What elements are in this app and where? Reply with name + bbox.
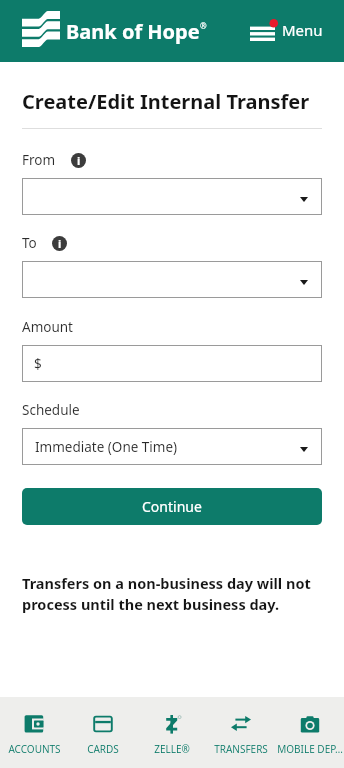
staticText: TRANSFERS (214, 742, 268, 756)
staticText: Menu (282, 20, 323, 40)
staticText: CARDS (87, 742, 119, 756)
staticText: Bank of Hope (66, 18, 200, 45)
button[interactable]: Amount field (22, 345, 322, 382)
staticText: MOBILE DEP… (277, 742, 343, 756)
button[interactable]: MOBILE DEP… (275, 701, 344, 768)
button[interactable]: CARDS (68, 701, 137, 768)
staticText: From (22, 151, 56, 169)
button[interactable]: Info (71, 153, 86, 168)
staticText: ACCOUNTS (8, 742, 61, 756)
staticText: ® (200, 20, 207, 31)
staticText: Immediate (One Time) (35, 438, 178, 456)
button[interactable]: ACCOUNTS (0, 701, 68, 768)
staticText: Transfers on a non-business day will not… (22, 573, 314, 615)
button[interactable]: Continue (22, 488, 322, 525)
button[interactable]: TRANSFERS (206, 701, 275, 768)
staticText: Schedule (22, 401, 80, 419)
button[interactable]: Info (52, 236, 67, 251)
button[interactable]: Select (22, 428, 322, 465)
staticText: ZELLE® (154, 742, 190, 756)
button[interactable]: Select from account (22, 178, 322, 215)
staticText: Create/Edit Internal Transfer (22, 88, 310, 115)
button[interactable]: Menu (250, 14, 323, 49)
staticText: Continue (142, 497, 202, 516)
staticText: To (22, 234, 37, 252)
staticText: i (77, 153, 81, 168)
button[interactable]: Select to account (22, 261, 322, 298)
staticText: Amount (22, 318, 73, 336)
staticText: i (58, 236, 62, 251)
staticText: $ (34, 355, 42, 373)
button[interactable]: ZELLE® (137, 701, 206, 768)
